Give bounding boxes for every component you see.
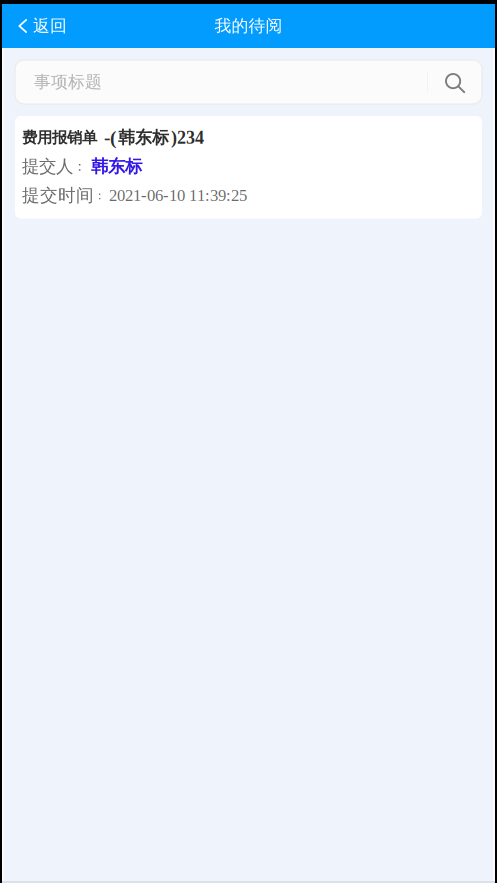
staticText: 提交时间 bbox=[22, 184, 94, 207]
staticText: 韩东标 bbox=[91, 155, 142, 177]
staticText: 我的待阅 bbox=[214, 15, 282, 37]
staticText: 费用报销单 bbox=[22, 128, 97, 147]
staticText: 返回 bbox=[33, 15, 67, 37]
staticText: 提交人 bbox=[22, 155, 73, 177]
staticText: 事项标题 bbox=[34, 71, 102, 93]
staticText: ： bbox=[73, 158, 86, 175]
staticText: )234 bbox=[171, 128, 204, 148]
button[interactable]: 返回 bbox=[2, 4, 79, 48]
button[interactable]: 费用报销单 bbox=[15, 116, 482, 219]
staticText: 2021-06-10 11:39:25 bbox=[109, 186, 247, 205]
staticText: -( bbox=[99, 127, 116, 148]
button[interactable]: 搜索 bbox=[428, 60, 482, 103]
staticText: ： bbox=[94, 188, 105, 203]
staticText: 韩东标 bbox=[118, 127, 169, 148]
